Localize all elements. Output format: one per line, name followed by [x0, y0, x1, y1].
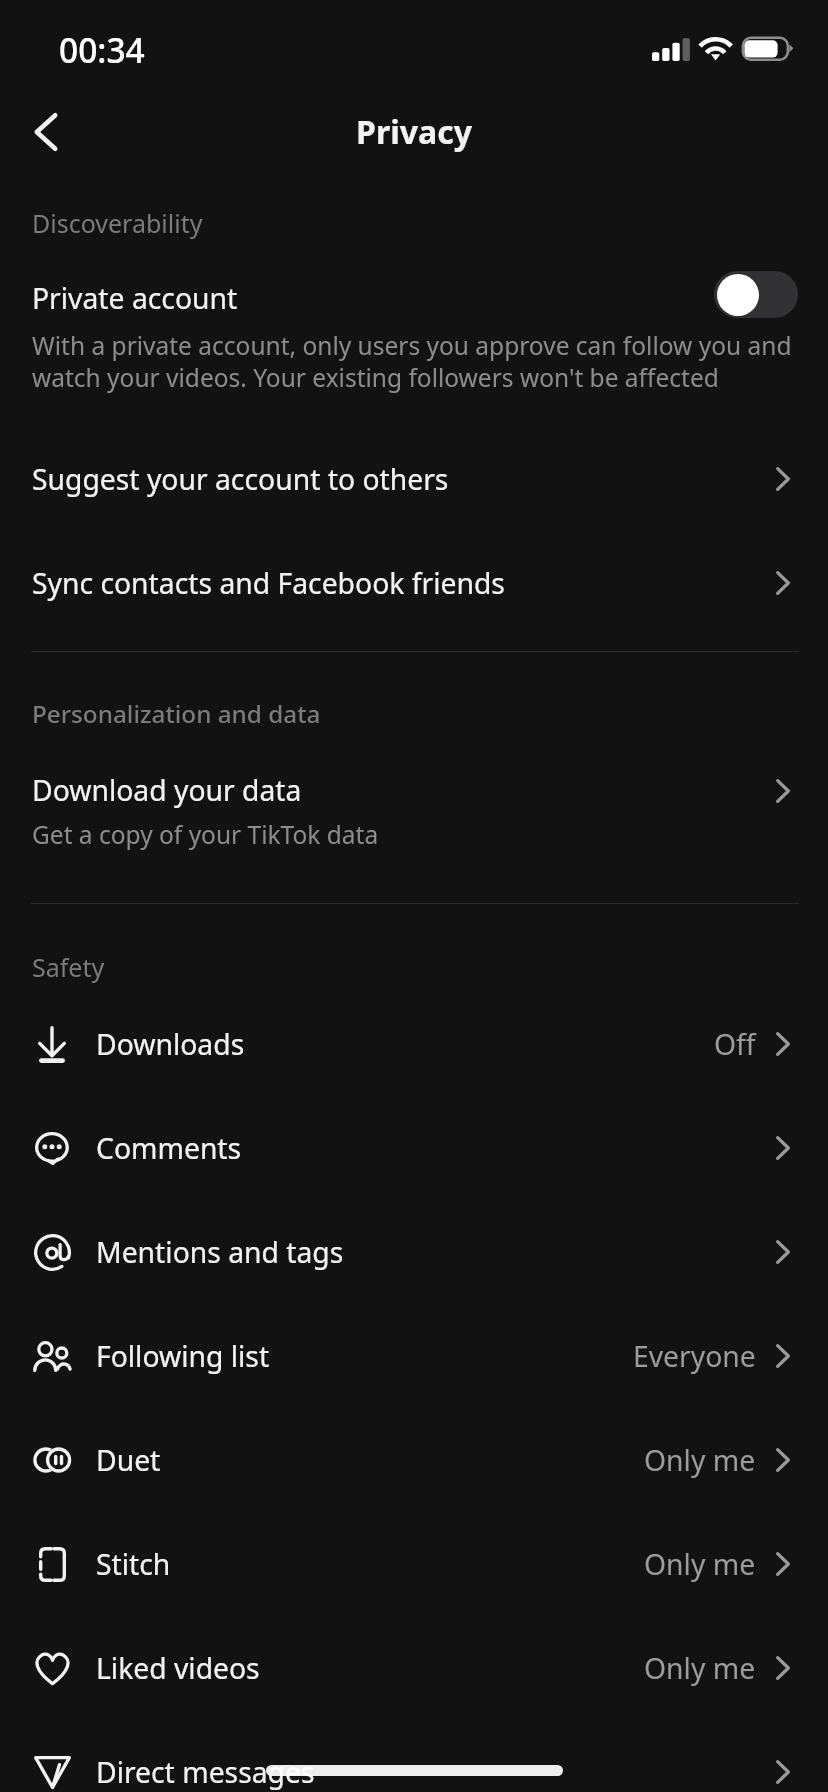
staticText: 00:34 — [59, 27, 145, 73]
staticText: Only me — [644, 1649, 756, 1688]
button[interactable]: Duet — [0, 1408, 828, 1512]
button[interactable]: Liked videos — [0, 1616, 828, 1720]
staticText: Safety — [32, 950, 105, 984]
staticText: Off — [714, 1025, 756, 1064]
staticText: Comments — [96, 1129, 242, 1168]
staticText: Sync contacts and Facebook friends — [32, 564, 505, 603]
button[interactable]: Private account — [714, 271, 798, 318]
button[interactable]: Suggest your account to others — [0, 427, 828, 531]
staticText: Only me — [644, 1441, 756, 1480]
button[interactable]: Private account — [0, 259, 828, 329]
button[interactable]: Following list — [0, 1304, 828, 1408]
button[interactable]: Direct messages — [0, 1720, 828, 1792]
staticText: Private account — [32, 279, 238, 318]
staticText: Get a copy of your TikTok data — [32, 818, 379, 851]
staticText: Mentions and tags — [96, 1233, 344, 1272]
button[interactable]: Comments — [0, 1096, 828, 1200]
button[interactable]: Stitch — [0, 1512, 828, 1616]
staticText: Download your data — [32, 771, 302, 810]
staticText: Only me — [644, 1545, 756, 1584]
button[interactable]: Download your data — [0, 751, 828, 859]
staticText: Downloads — [96, 1025, 245, 1064]
button[interactable]: Downloads — [0, 992, 828, 1096]
staticText: Duet — [96, 1441, 161, 1480]
staticText: With a private account, only users you a… — [32, 329, 796, 394]
staticText: Suggest your account to others — [32, 460, 449, 499]
staticText: Personalization and data — [32, 697, 321, 730]
staticText: Privacy — [356, 110, 472, 154]
button[interactable]: Sync contacts and Facebook friends — [0, 531, 828, 635]
staticText: Liked videos — [96, 1649, 260, 1688]
staticText: Everyone — [633, 1337, 756, 1376]
staticText: Following list — [96, 1337, 270, 1376]
staticText: Stitch — [96, 1545, 171, 1584]
staticText: Direct messages — [96, 1753, 315, 1792]
staticText: Discoverability — [32, 206, 203, 240]
button[interactable]: Mentions and tags — [0, 1200, 828, 1304]
button[interactable]: Back — [14, 100, 78, 164]
